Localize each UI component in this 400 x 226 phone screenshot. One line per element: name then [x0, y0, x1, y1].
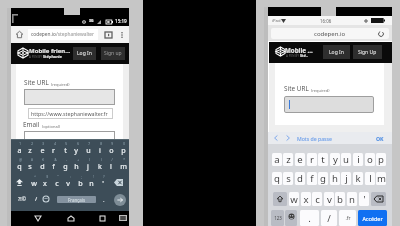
button[interactable]: e [36, 142, 48, 157]
button[interactable] [273, 192, 287, 206]
button[interactable]: .fr [339, 210, 356, 226]
button[interactable]: n [85, 175, 97, 190]
button[interactable]: d [295, 172, 305, 185]
staticText: Mobile frien... [29, 47, 71, 55]
button[interactable]: Previous field [271, 133, 280, 142]
button[interactable]: ' [359, 192, 369, 206]
button[interactable]: f [307, 172, 317, 185]
button[interactable]: y [70, 142, 82, 157]
button[interactable]: x [39, 175, 51, 190]
button[interactable]: o [105, 142, 117, 157]
button[interactable]: a [13, 142, 25, 157]
button[interactable]: Log In [73, 47, 96, 60]
button[interactable]: Home [14, 29, 25, 40]
button[interactable]: v [62, 175, 74, 190]
button[interactable]: i [94, 142, 106, 157]
button[interactable]: / [321, 210, 337, 226]
button[interactable] [24, 89, 115, 105]
button[interactable]: codepen.io [271, 28, 389, 39]
button[interactable]: q [13, 158, 25, 173]
button[interactable]: r [307, 153, 317, 166]
button[interactable] [285, 210, 297, 226]
staticText: Français [68, 197, 85, 203]
button[interactable]: Log In [323, 45, 350, 59]
button[interactable]: https://www.stephaniewalter.fr [28, 108, 113, 119]
button[interactable]: Backspace [112, 177, 125, 187]
button[interactable]: c [312, 192, 322, 206]
button[interactable]: b [335, 192, 345, 206]
button[interactable]: w [289, 192, 299, 206]
staticText: e [297, 153, 303, 166]
button[interactable] [371, 192, 386, 206]
button[interactable]: Recent apps [96, 212, 109, 225]
button[interactable]: Français [57, 196, 96, 203]
button[interactable]: o [365, 153, 375, 166]
button[interactable]: g [59, 158, 71, 173]
button[interactable]: Next field [283, 133, 292, 142]
staticText: f [310, 172, 314, 185]
staticText: ' [363, 193, 366, 206]
staticText: ' [102, 178, 104, 188]
staticText: 2 [31, 142, 33, 146]
button[interactable]: Sign Up [353, 45, 382, 59]
button[interactable]: Home [64, 212, 77, 225]
button[interactable]: l [365, 172, 375, 185]
button[interactable]: u [82, 142, 94, 157]
button[interactable]: i [353, 153, 363, 166]
button[interactable]: q [272, 172, 282, 185]
button[interactable]: y [330, 153, 340, 166]
button[interactable]: p [117, 142, 129, 157]
button[interactable]: r [47, 142, 59, 157]
button[interactable]: t [318, 153, 328, 166]
button[interactable]: x [301, 192, 311, 206]
button[interactable]: f [47, 158, 59, 173]
button[interactable]: b [74, 175, 86, 190]
button[interactable]: codepen.io [28, 29, 98, 40]
staticText: i [99, 145, 101, 155]
button[interactable]: s [24, 158, 36, 173]
button[interactable]: Reload [376, 29, 385, 38]
button[interactable]: Back [31, 212, 44, 225]
button[interactable]: u [341, 153, 351, 166]
button[interactable]: Emoji [41, 193, 50, 204]
button[interactable]: k [94, 158, 106, 173]
button[interactable]: . [300, 210, 319, 226]
button[interactable]: Switch keyboard [118, 213, 128, 223]
button[interactable] [284, 96, 374, 113]
button[interactable]: ' [97, 175, 109, 190]
button[interactable]: Tabs [103, 30, 113, 40]
button[interactable]: m [117, 158, 129, 173]
button[interactable]: s [283, 172, 293, 185]
button[interactable]: 123 [271, 210, 284, 226]
button[interactable]: h [70, 158, 82, 173]
button[interactable]: m [376, 172, 386, 185]
button[interactable]: d [36, 158, 48, 173]
staticText: r [52, 145, 55, 155]
button[interactable]: e [295, 153, 305, 166]
button[interactable]: l [105, 158, 117, 173]
button[interactable]: j [341, 172, 351, 185]
button[interactable]: k [353, 172, 363, 185]
button[interactable]: h [330, 172, 340, 185]
button[interactable]: v [324, 192, 334, 206]
button[interactable]: z [24, 142, 36, 157]
button[interactable]: Shift [13, 176, 25, 188]
button[interactable]: g [318, 172, 328, 185]
button[interactable]: z [283, 153, 293, 166]
button[interactable]: t [59, 142, 71, 157]
staticText: Sign up [104, 50, 122, 57]
button[interactable]: More options [117, 30, 126, 39]
button[interactable]: n [347, 192, 357, 206]
button[interactable]: Enter [114, 194, 126, 206]
button[interactable]: p [376, 153, 386, 166]
button[interactable]: / [32, 193, 40, 204]
button[interactable]: ?!© [14, 193, 29, 204]
button[interactable]: Sign up [101, 47, 125, 60]
button[interactable]: w [28, 175, 40, 190]
button[interactable]: a [272, 153, 282, 166]
button[interactable]: j [82, 158, 94, 173]
staticText: (required) [51, 82, 70, 87]
button[interactable]: . [100, 194, 107, 205]
button[interactable]: c [51, 175, 63, 190]
button[interactable]: Accéder [358, 210, 387, 226]
